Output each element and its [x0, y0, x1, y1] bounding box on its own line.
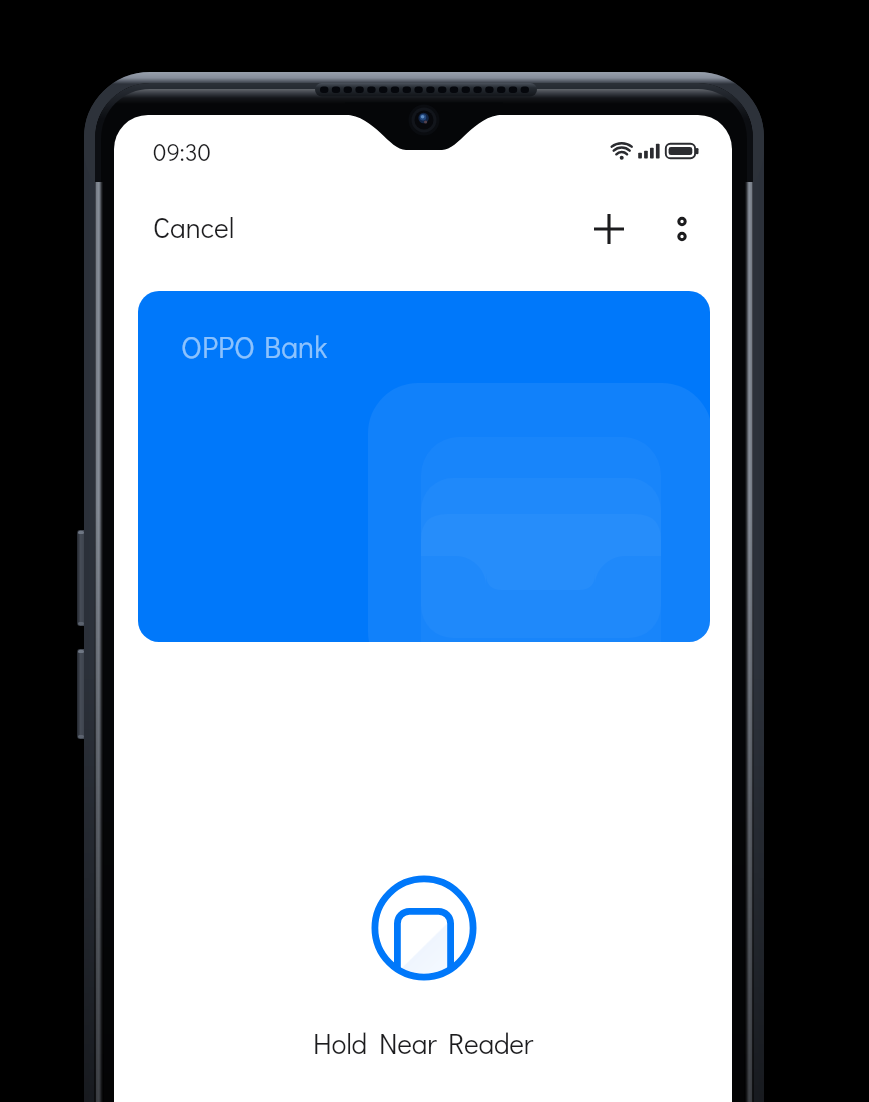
staticText: Reader — [448, 1025, 534, 1062]
staticText: Hold — [313, 1025, 368, 1062]
button[interactable]: Add card — [581, 201, 637, 257]
button[interactable]: OPPO — [138, 291, 710, 642]
button[interactable]: NFC ready — [364, 868, 484, 988]
staticText: Cancel — [153, 209, 235, 246]
button[interactable]: More options — [654, 201, 710, 257]
staticText: OPPO — [181, 327, 255, 366]
staticText: Near — [379, 1025, 437, 1062]
button[interactable]: Cancel — [139, 199, 249, 256]
staticText: 09:30 — [153, 136, 211, 167]
staticText: Bank — [264, 327, 328, 366]
